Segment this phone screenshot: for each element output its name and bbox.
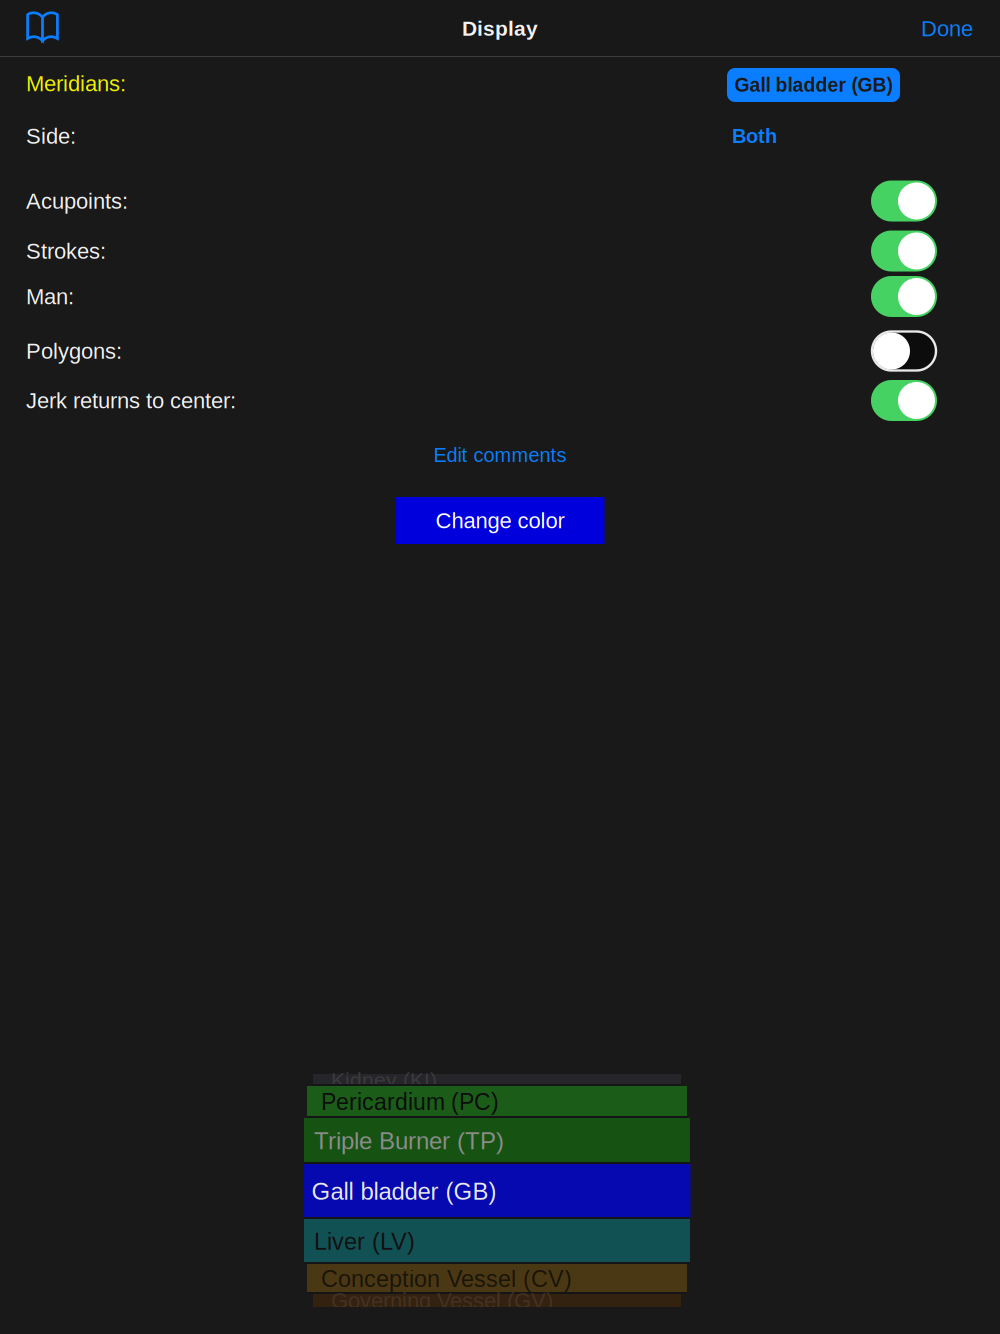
- staticText: Both: [732, 125, 777, 147]
- button[interactable]: Acupoints:: [0, 176, 1000, 226]
- button[interactable]: Polygons:: [0, 325, 1000, 377]
- staticText: Acupoints:: [26, 189, 128, 213]
- button[interactable]: Liver (LV): [304, 1219, 690, 1264]
- staticText: Strokes:: [26, 239, 106, 263]
- button[interactable]: Gall bladder (GB): [727, 65, 900, 102]
- staticText: Meridians:: [26, 71, 126, 96]
- button[interactable]: Kidney (KI): [313, 1074, 681, 1086]
- staticText: Governing Vessel (GV): [331, 1288, 553, 1313]
- button[interactable]: Jerk returns to center:: [0, 377, 1000, 424]
- button[interactable]: Change color: [395, 497, 604, 544]
- staticText: Change color: [435, 508, 564, 533]
- button[interactable]: Man:: [0, 276, 1000, 317]
- staticText: Conception Vessel (CV): [321, 1266, 572, 1292]
- button[interactable]: Done: [901, 0, 1000, 57]
- staticText: Polygons:: [26, 339, 122, 363]
- button[interactable]: Strokes:: [0, 226, 1000, 276]
- staticText: Man:: [26, 284, 74, 309]
- button[interactable]: Edit comments: [0, 435, 1000, 475]
- button[interactable]: Triple Burner (TP): [304, 1118, 690, 1164]
- staticText: Gall bladder (GB): [734, 74, 892, 96]
- button[interactable]: Library: [0, 0, 70, 57]
- button[interactable]: Conception Vessel (CV): [307, 1264, 687, 1294]
- staticText: Gall bladder (GB): [311, 1178, 496, 1205]
- button[interactable]: Governing Vessel (GV): [313, 1294, 681, 1307]
- staticText: Edit comments: [433, 444, 566, 466]
- staticText: Jerk returns to center:: [26, 388, 236, 413]
- button[interactable]: Pericardium (PC): [307, 1086, 687, 1118]
- staticText: Pericardium (PC): [321, 1089, 499, 1115]
- staticText: Display: [462, 17, 538, 40]
- button[interactable]: Both: [732, 125, 777, 147]
- staticText: Kidney (KI): [331, 1068, 437, 1092]
- staticText: Triple Burner (TP): [314, 1128, 504, 1154]
- staticText: Liver (LV): [314, 1228, 415, 1255]
- staticText: Done: [921, 16, 973, 41]
- button[interactable]: Gall bladder (GB): [303, 1164, 690, 1219]
- staticText: Side:: [26, 124, 76, 148]
